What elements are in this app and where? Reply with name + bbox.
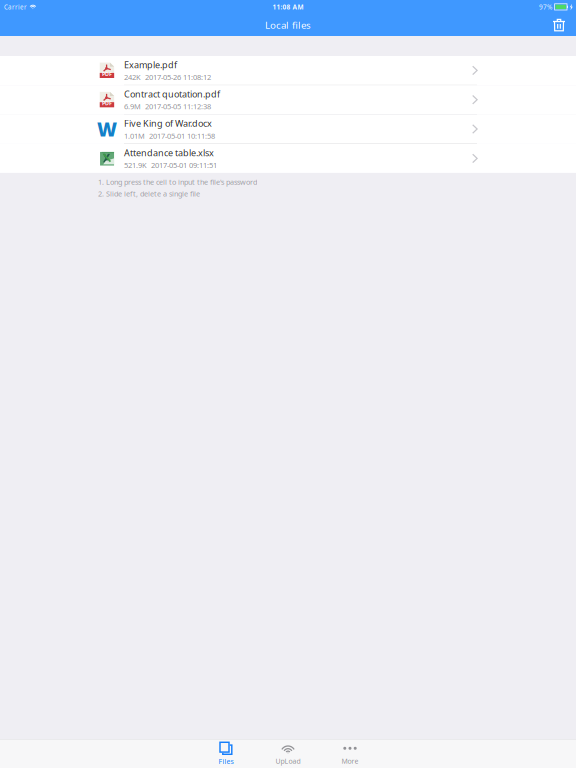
- staticText: 11:08 AM: [272, 3, 303, 11]
- staticText: 2. Slide left, delete a single file: [98, 189, 200, 199]
- staticText: More: [341, 756, 358, 766]
- staticText: PDF: [102, 70, 112, 78]
- staticText: Files: [218, 757, 233, 766]
- button[interactable]: W: [0, 115, 576, 144]
- staticText: 97%: [539, 3, 552, 11]
- button[interactable]: Attendance table.xlsx: [0, 144, 576, 173]
- staticText: Example.pdf: [124, 58, 177, 71]
- button[interactable]: UpLoad: [257, 741, 319, 767]
- staticText: PDF: [102, 100, 112, 107]
- staticText: 6.9M 2017-05-05 11:12:38: [124, 101, 211, 112]
- button[interactable]: Files: [195, 741, 257, 767]
- staticText: Carrier: [4, 3, 27, 11]
- staticText: 521.9K 2017-05-01 09:11:51: [124, 160, 217, 170]
- staticText: UpLoad: [275, 756, 300, 766]
- staticText: Five King of War.docx: [124, 117, 212, 129]
- staticText: 1. Long press the cell to input the file…: [98, 177, 257, 187]
- staticText: 242K 2017-05-26 11:08:12: [124, 72, 211, 82]
- button[interactable]: More: [319, 741, 381, 767]
- staticText: Contract quotation.pdf: [124, 88, 220, 100]
- staticText: Local files: [265, 18, 311, 32]
- button[interactable]: Delete files: [546, 14, 572, 36]
- button[interactable]: PDF: [0, 56, 576, 85]
- staticText: 1.01M 2017-05-01 10:11:58: [124, 131, 215, 141]
- staticText: Attendance table.xlsx: [124, 146, 214, 159]
- staticText: W: [97, 116, 117, 142]
- button[interactable]: PDF: [0, 85, 576, 115]
